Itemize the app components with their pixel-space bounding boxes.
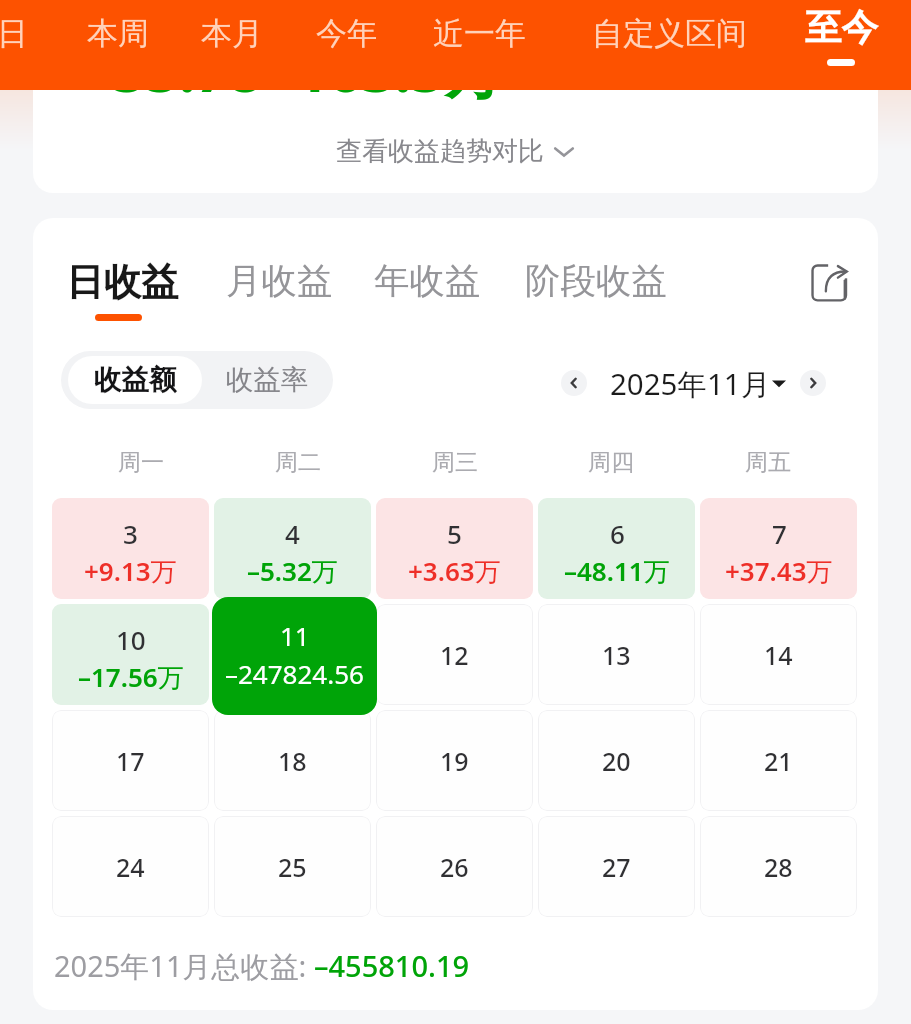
button[interactable]: 11: [212, 597, 377, 715]
button[interactable]: 月收益: [226, 259, 333, 304]
button[interactable]: 3: [52, 498, 209, 599]
button[interactable]: 4: [214, 498, 371, 599]
staticText: 4: [285, 516, 300, 551]
staticText: 查看收益趋势对比: [336, 135, 544, 168]
staticText: 6: [610, 516, 625, 551]
button[interactable]: 26: [376, 816, 533, 917]
staticText: 11: [280, 618, 310, 653]
button[interactable]: 本周: [87, 0, 148, 90]
button[interactable]: 日收益: [66, 259, 179, 321]
button[interactable]: 25: [214, 816, 371, 917]
staticText: +9.13万: [84, 553, 177, 589]
staticText: -55.78 -163.5万: [94, 40, 503, 109]
button[interactable]: 查看收益趋势对比: [330, 131, 581, 172]
button[interactable]: 年收益: [374, 259, 481, 304]
staticText: 12: [440, 638, 469, 672]
button[interactable]: 21: [700, 710, 857, 811]
button[interactable]: 18: [214, 710, 371, 811]
button[interactable]: 2025年11月: [610, 363, 786, 403]
button[interactable]: 5: [376, 498, 533, 599]
button[interactable]: 自定义区间: [589, 0, 749, 90]
button[interactable]: 13: [538, 604, 695, 705]
staticText: 自定义区间: [592, 14, 747, 53]
staticText: 周一: [118, 448, 164, 477]
staticText: 周五: [745, 448, 791, 477]
button[interactable]: 24: [52, 816, 209, 917]
button[interactable]: 19: [376, 710, 533, 811]
button[interactable]: 6: [538, 498, 695, 599]
button[interactable]: 本月: [201, 0, 260, 90]
button[interactable]: 日: [0, 0, 51, 90]
button[interactable]: 27: [538, 816, 695, 917]
staticText: 2025年11月: [610, 363, 771, 403]
staticText: 19: [440, 744, 469, 778]
button[interactable]: 收益率: [202, 351, 333, 409]
staticText: 7: [772, 516, 787, 551]
staticText: 18: [278, 744, 307, 778]
staticText: –48.11万: [564, 553, 670, 589]
button[interactable]: 近一年: [432, 0, 527, 90]
staticText: 日收益: [66, 259, 179, 306]
button[interactable]: 28: [700, 816, 857, 917]
staticText: 周四: [588, 448, 634, 477]
staticText: –247824.56: [225, 656, 364, 691]
staticText: 本周: [87, 14, 148, 53]
staticText: 13: [602, 638, 631, 672]
staticText: 周二: [275, 448, 321, 477]
staticText: 周三: [432, 448, 478, 477]
staticText: 17: [116, 744, 145, 778]
button[interactable]: 20: [538, 710, 695, 811]
staticText: 21: [764, 744, 793, 778]
staticText: 今年: [316, 14, 376, 53]
button[interactable]: 收益额: [68, 356, 202, 404]
staticText: 10: [116, 622, 146, 657]
staticText: 至今: [805, 5, 878, 51]
button[interactable]: 阶段收益: [525, 259, 667, 304]
staticText: 27: [602, 850, 631, 884]
button[interactable]: Next month: [800, 370, 826, 396]
staticText: –17.56万: [78, 659, 184, 695]
button[interactable]: Previous month: [561, 370, 587, 396]
staticText: 25: [278, 850, 307, 884]
staticText: 收益额: [94, 363, 177, 398]
staticText: –455810.19: [314, 946, 470, 985]
staticText: 26: [440, 850, 469, 884]
staticText: 阶段收益: [525, 259, 667, 304]
button[interactable]: 至今: [803, 0, 879, 90]
staticText: 14: [764, 638, 793, 672]
button[interactable]: Share: [797, 249, 863, 315]
button[interactable]: 7: [700, 498, 857, 599]
staticText: 5: [447, 516, 462, 551]
button[interactable]: 10: [52, 604, 209, 705]
button[interactable]: 14: [700, 604, 857, 705]
staticText: 本月: [201, 14, 260, 53]
staticText: 年收益: [374, 259, 481, 304]
button[interactable]: 今年: [316, 0, 376, 90]
button[interactable]: 17: [52, 710, 209, 811]
staticText: 近一年: [433, 14, 526, 53]
staticText: +3.63万: [408, 553, 501, 589]
staticText: 20: [602, 744, 631, 778]
staticText: 24: [116, 850, 145, 884]
staticText: 日: [0, 14, 28, 53]
button[interactable]: 12: [376, 604, 533, 705]
staticText: +37.43万: [725, 553, 833, 589]
staticText: 收益率: [226, 363, 309, 398]
staticText: 3: [123, 516, 138, 551]
staticText: 月收益: [226, 259, 333, 304]
staticText: –5.32万: [247, 553, 338, 589]
staticText: 2025年11月总收益:: [54, 946, 314, 986]
staticText: 28: [764, 850, 793, 884]
